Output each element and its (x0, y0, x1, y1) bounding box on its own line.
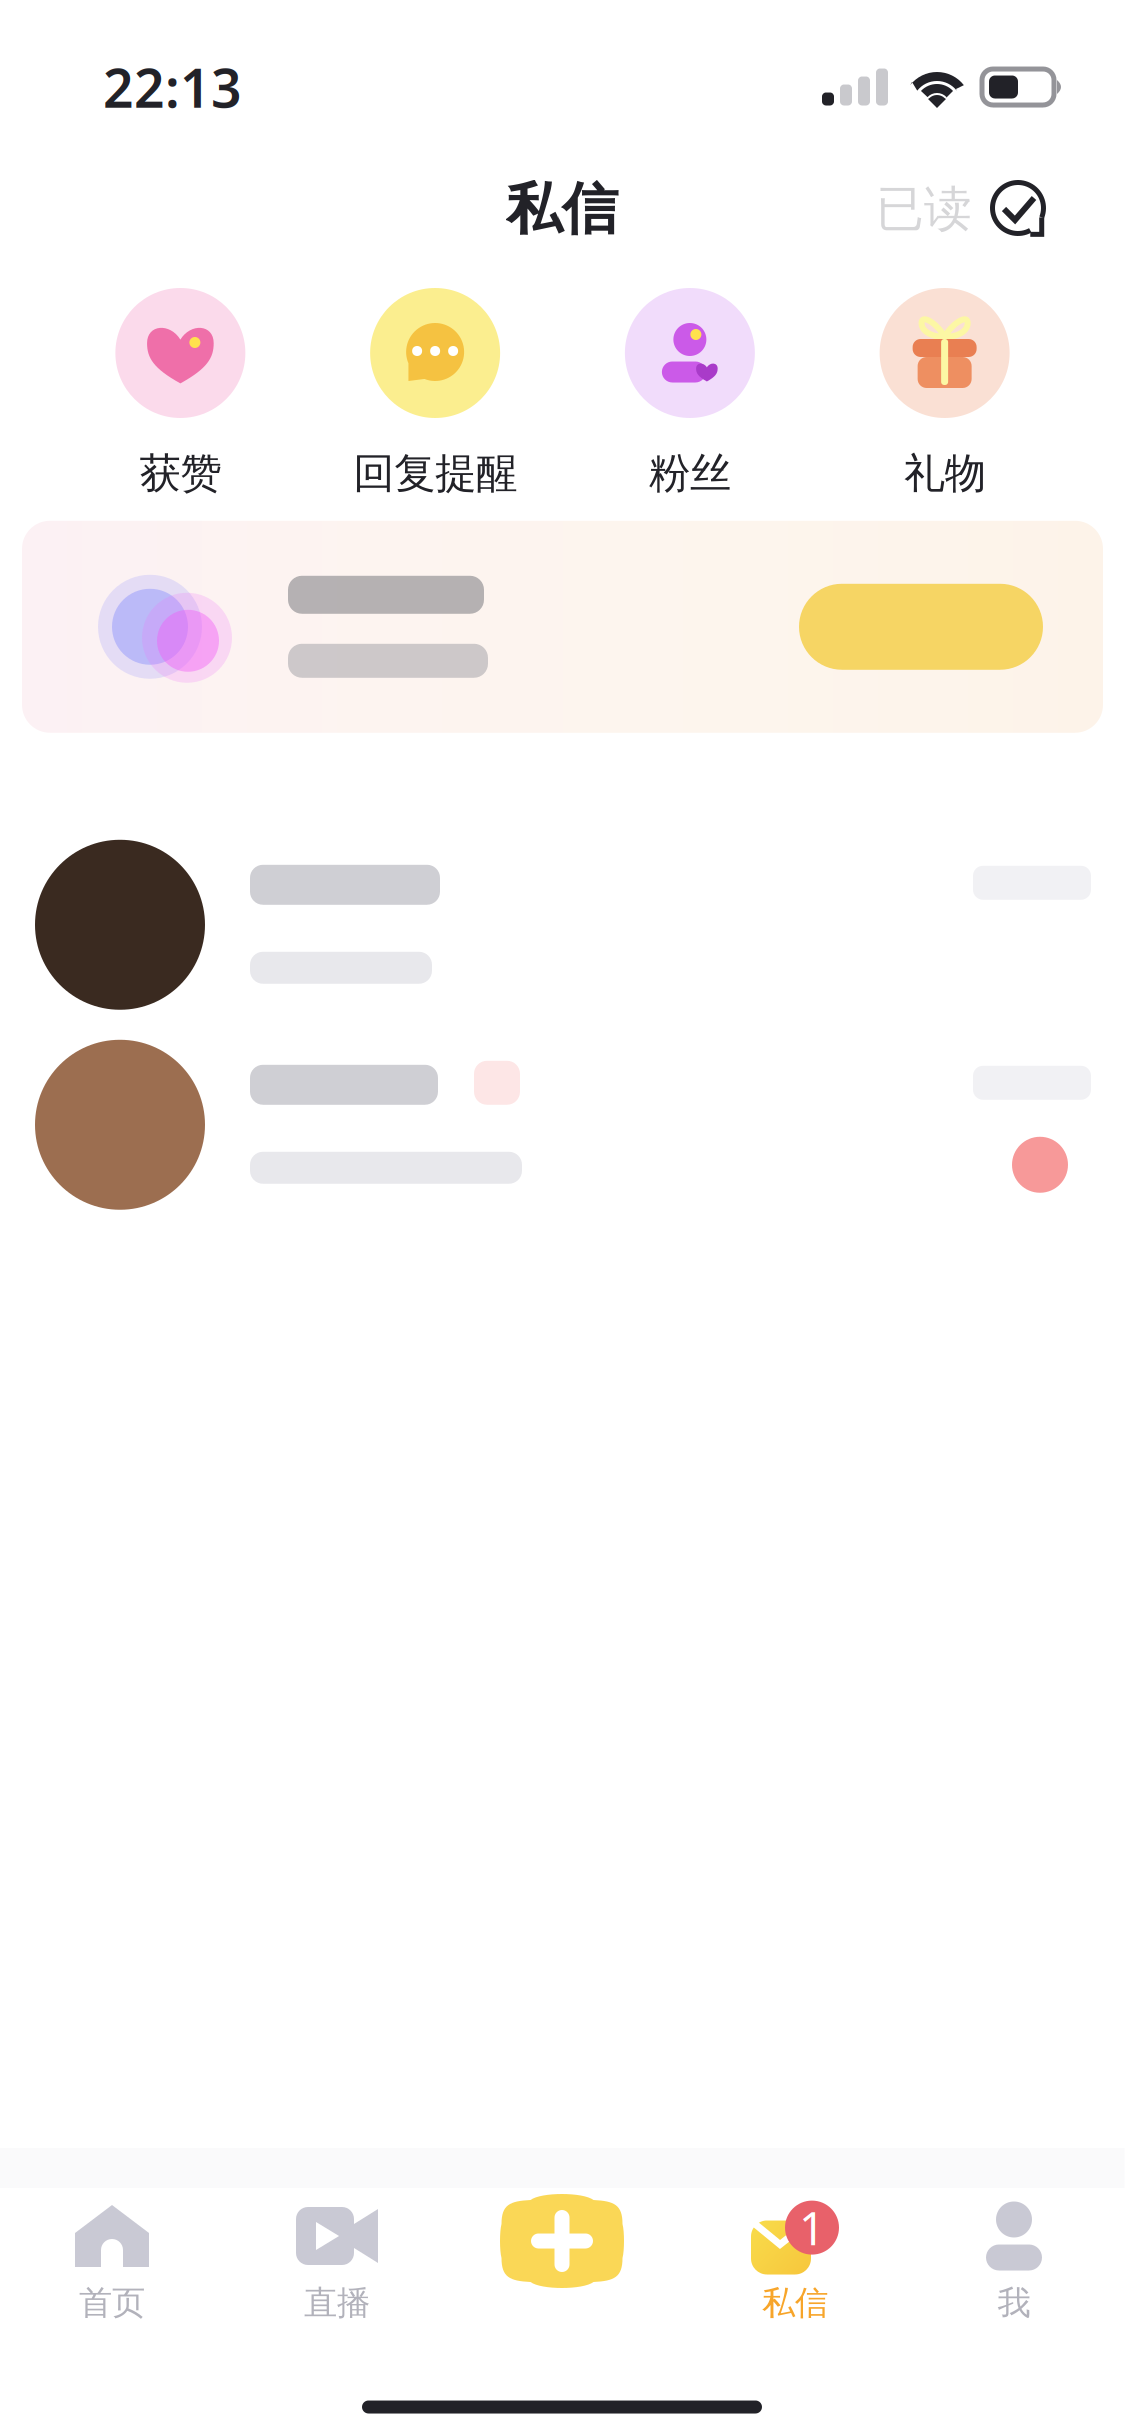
button[interactable]: 1 (0, 2148, 1125, 2436)
staticText: 获赞 (139, 448, 221, 499)
staticText: 礼物 (904, 448, 986, 499)
button[interactable]: 礼物 (817, 288, 1072, 499)
staticText: 已读 (876, 179, 972, 238)
button[interactable]: 首页 (0, 2148, 1125, 2436)
staticText: 我 (997, 2282, 1030, 2323)
button[interactable] (0, 825, 1125, 1025)
staticText: 私信 (506, 175, 618, 243)
button[interactable]: 回复提醒 (308, 288, 563, 499)
staticText: 回复提醒 (353, 448, 517, 499)
staticText: 直播 (304, 2282, 370, 2323)
staticText: 粉丝 (649, 448, 731, 499)
button[interactable]: 已读 (864, 165, 1060, 252)
button[interactable]: 获赞 (53, 288, 308, 499)
button[interactable]: 直播 (0, 2148, 1125, 2436)
button[interactable]: 我 (0, 2148, 1125, 2436)
button[interactable] (0, 521, 1125, 733)
button[interactable] (0, 1025, 1125, 1225)
staticText: 22:13 (103, 52, 242, 122)
staticText: 1 (799, 2197, 825, 2258)
button[interactable]: Create (0, 2148, 1125, 2436)
button[interactable]: 粉丝 (562, 288, 817, 499)
staticText: 私信 (762, 2282, 828, 2323)
staticText: 首页 (79, 2282, 145, 2323)
